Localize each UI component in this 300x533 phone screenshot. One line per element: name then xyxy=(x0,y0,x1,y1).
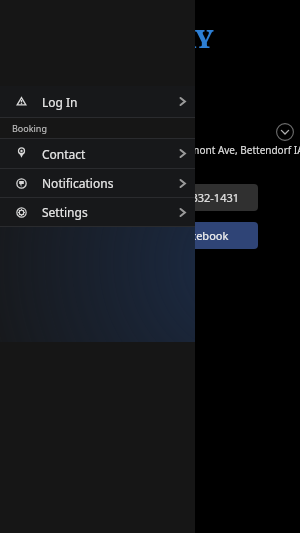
staticText: 563-332-1431 xyxy=(169,190,240,205)
staticText: Log In xyxy=(42,94,169,110)
button[interactable]: Notifications xyxy=(0,169,195,197)
button[interactable]: 563-332-1431 xyxy=(150,184,258,211)
button[interactable]: Log In xyxy=(0,86,195,117)
staticText: 5885 Tremont Ave, Bettendorf IA 52722 xyxy=(150,143,300,157)
staticText: Notifications xyxy=(42,175,169,191)
button[interactable]: Contact xyxy=(0,139,195,168)
staticText: WRIGHTWAY xyxy=(33,21,215,55)
button[interactable]: Facebook xyxy=(150,222,258,249)
staticText: Booking xyxy=(12,122,47,134)
staticText: Contact xyxy=(42,146,169,162)
staticText: Settings xyxy=(42,204,169,220)
button[interactable]: Settings xyxy=(0,198,195,226)
button[interactable]: Expand details xyxy=(276,123,294,141)
staticText: Facebook xyxy=(179,228,229,243)
